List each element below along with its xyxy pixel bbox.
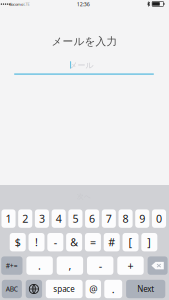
staticText: # (108, 235, 115, 249)
button[interactable]: 4 (52, 209, 66, 228)
button[interactable]: , (57, 256, 83, 275)
staticText: space (53, 284, 75, 294)
staticText: 6 (89, 211, 95, 226)
staticText: 1 (5, 211, 11, 226)
button[interactable]: . (26, 256, 53, 275)
staticText: 12:36 (77, 1, 90, 8)
staticText: LTE (23, 1, 29, 7)
staticText: 0 (156, 211, 162, 226)
button[interactable]: . (104, 280, 122, 298)
staticText: 9 (139, 211, 145, 226)
staticText: ] (147, 235, 151, 249)
button[interactable]: 0 (152, 209, 166, 228)
staticText: , (68, 258, 71, 273)
button[interactable]: #+= (1, 256, 22, 275)
staticText: - (99, 258, 102, 273)
button[interactable]: 1 (1, 209, 16, 228)
staticText: #+= (6, 261, 18, 270)
staticText: docomo (9, 1, 23, 7)
staticText: = (90, 235, 96, 249)
button[interactable]: Next keyboard (26, 280, 42, 298)
button[interactable]: 3 (35, 209, 49, 228)
staticText: 2 (22, 211, 28, 226)
button[interactable]: 2 (18, 209, 32, 228)
staticText: . (112, 282, 115, 296)
staticText: Next (137, 284, 154, 294)
staticText: . (38, 258, 41, 273)
staticText: 8 (122, 211, 128, 226)
button[interactable]: - (87, 256, 113, 275)
staticText: [ (128, 235, 132, 249)
button[interactable]: Next (126, 280, 165, 298)
staticText: $ (15, 235, 21, 249)
staticText: 3 (39, 211, 45, 226)
staticText: 5 (72, 211, 78, 226)
staticText: + (127, 258, 133, 273)
button[interactable]: space (46, 280, 83, 298)
button[interactable]: ABC (2, 280, 22, 298)
button[interactable]: [ (122, 233, 138, 251)
staticText: 7 (106, 211, 112, 226)
staticText: ABC (6, 285, 18, 293)
button[interactable]: # (104, 233, 120, 251)
button[interactable]: 8 (118, 209, 133, 228)
button[interactable]: Delete (148, 256, 168, 275)
button[interactable]: 5 (68, 209, 82, 228)
button[interactable]: & (66, 233, 82, 251)
staticText: - (54, 235, 57, 249)
button[interactable]: 6 (85, 209, 99, 228)
button[interactable]: = (85, 233, 101, 251)
button[interactable]: 7 (102, 209, 116, 228)
button[interactable]: ! (28, 233, 44, 251)
button[interactable]: - (47, 233, 63, 251)
staticText: ! (35, 235, 38, 249)
staticText: & (70, 235, 78, 249)
button[interactable]: 9 (135, 209, 149, 228)
staticText: @ (89, 283, 97, 295)
staticText: メールを入力 (51, 35, 117, 48)
button[interactable]: ] (141, 233, 157, 251)
staticText: メール (69, 60, 93, 70)
button[interactable]: @ (85, 280, 101, 298)
staticText: 4 (56, 211, 62, 226)
button[interactable]: $ (10, 233, 26, 251)
button[interactable]: + (117, 256, 144, 275)
